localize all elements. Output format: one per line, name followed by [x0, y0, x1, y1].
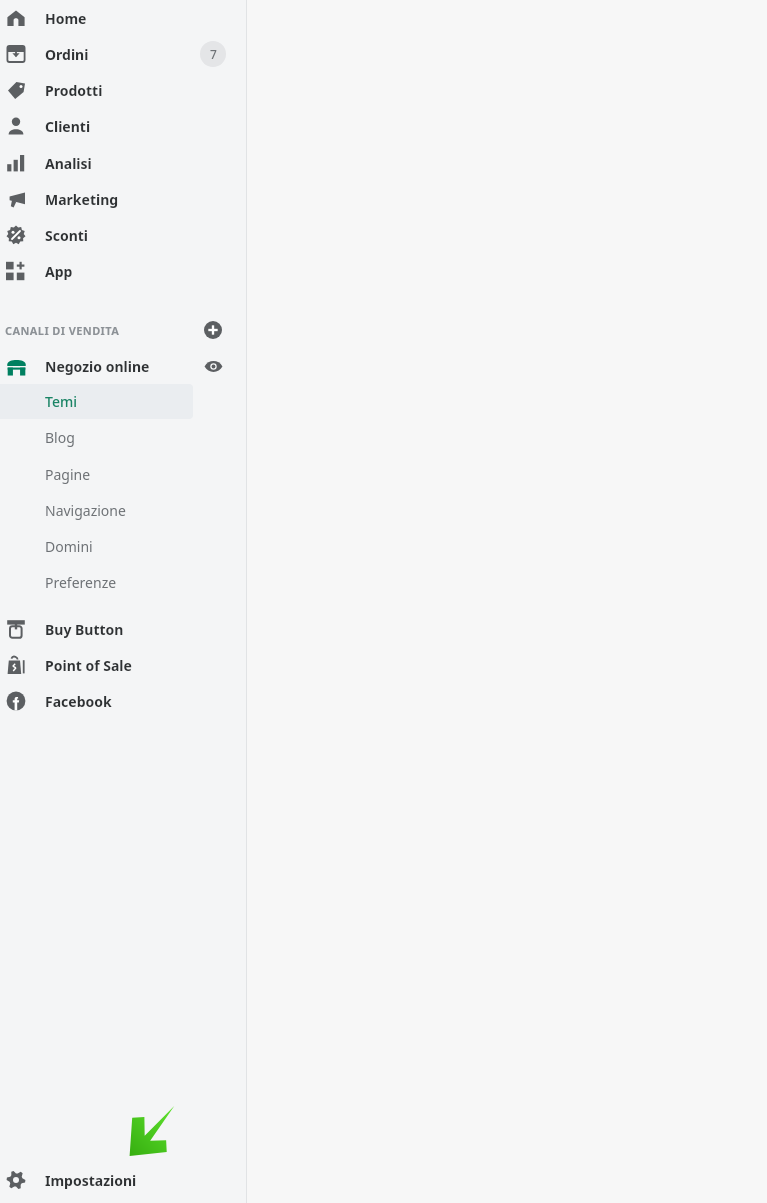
staticText: Temi	[45, 392, 77, 411]
staticText: Pagine	[45, 465, 91, 484]
staticText: Clienti	[45, 117, 91, 136]
staticText: Preferenze	[45, 573, 117, 592]
button[interactable]: App	[0, 253, 247, 289]
button[interactable]: Sconti	[0, 217, 247, 253]
button[interactable]: Analisi	[0, 145, 247, 181]
button[interactable]: Marketing	[0, 181, 247, 217]
staticText: Marketing	[45, 190, 119, 209]
button[interactable]: Negozio online	[0, 348, 247, 384]
staticText: Domini	[45, 537, 93, 556]
button[interactable]: Pagine	[0, 457, 193, 492]
button[interactable]: Facebook	[0, 683, 247, 719]
staticText: Point of Sale	[45, 656, 132, 675]
staticText: App	[45, 262, 73, 281]
button[interactable]: Prodotti	[0, 72, 247, 108]
button[interactable]: Aggiungi canale di vendita	[200, 317, 226, 343]
button[interactable]: Impostazioni	[0, 1162, 247, 1198]
button[interactable]: Preferenze	[0, 565, 193, 600]
staticText: 7	[210, 46, 217, 62]
button[interactable]: Point of Sale	[0, 647, 247, 683]
button[interactable]: Clienti	[0, 108, 247, 144]
staticText: Sconti	[45, 226, 89, 245]
button[interactable]: Temi	[0, 384, 193, 419]
staticText: Facebook	[45, 692, 112, 711]
staticText: Analisi	[45, 154, 92, 173]
button[interactable]: Ordini	[0, 36, 247, 72]
staticText: CANALI DI VENDITA	[5, 323, 120, 338]
staticText: Prodotti	[45, 81, 103, 100]
staticText: Negozio online	[45, 357, 150, 376]
staticText: Buy Button	[45, 620, 124, 639]
button[interactable]: Visualizza negozio online	[200, 353, 226, 379]
button[interactable]: Domini	[0, 529, 193, 564]
staticText: Ordini	[45, 45, 89, 64]
staticText: Navigazione	[45, 501, 126, 520]
button[interactable]: Blog	[0, 420, 193, 455]
staticText: Impostazioni	[45, 1171, 137, 1190]
button[interactable]: Buy Button	[0, 611, 247, 647]
staticText: Home	[45, 9, 87, 28]
staticText: Blog	[45, 428, 75, 447]
button[interactable]: Home	[0, 0, 247, 36]
button[interactable]: Navigazione	[0, 493, 193, 528]
